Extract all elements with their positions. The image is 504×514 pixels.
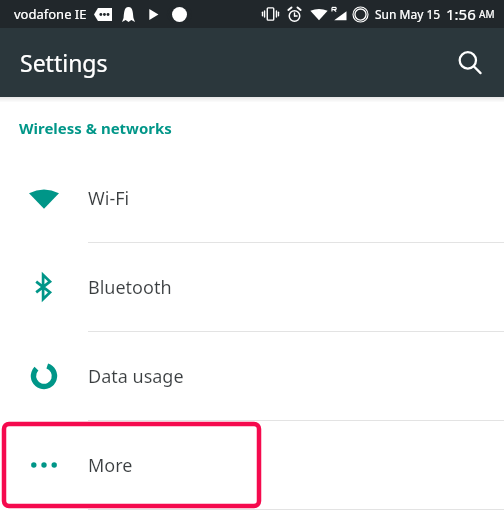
staticText: Wi-Fi <box>88 186 130 211</box>
staticText: 1:56 <box>446 4 476 24</box>
staticText: Sun May 15 <box>375 6 441 22</box>
staticText: Data usage <box>88 364 184 389</box>
staticText: Settings <box>20 47 108 78</box>
button[interactable]: Wi-Fi <box>0 154 504 242</box>
staticText: Bluetooth <box>88 275 172 300</box>
staticText: AM <box>479 7 495 21</box>
button[interactable]: More <box>0 421 504 509</box>
staticText: vodafone IE <box>14 5 87 23</box>
staticText: More <box>88 453 133 478</box>
button[interactable]: Data usage <box>0 332 504 420</box>
button[interactable]: Bluetooth <box>0 243 504 331</box>
staticText: Wireless & networks <box>19 118 172 138</box>
button[interactable]: Search <box>446 39 494 87</box>
